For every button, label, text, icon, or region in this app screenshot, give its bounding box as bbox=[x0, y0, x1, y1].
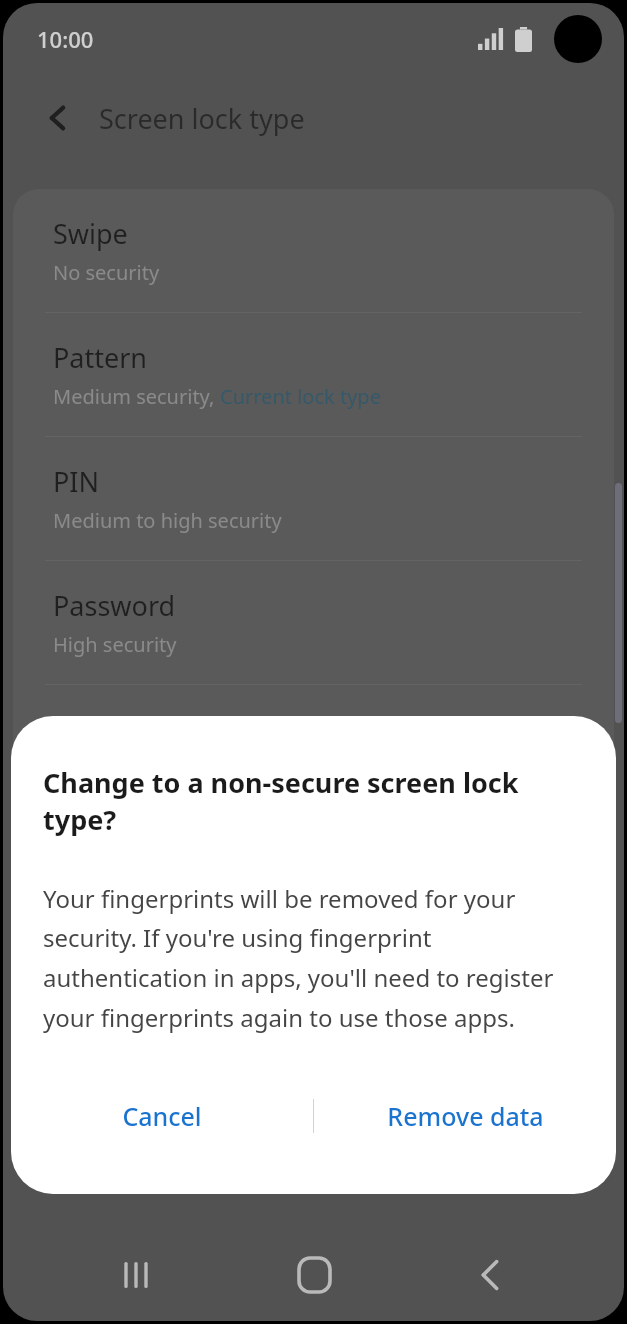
button[interactable]: PIN bbox=[13, 437, 614, 560]
staticText: PIN bbox=[53, 463, 100, 500]
button[interactable]: Pattern bbox=[13, 313, 614, 436]
staticText: Medium security, bbox=[53, 383, 220, 410]
button[interactable]: Cancel bbox=[11, 1080, 313, 1152]
staticText: Medium to high security bbox=[53, 507, 282, 534]
staticText: Pattern bbox=[53, 339, 148, 376]
button[interactable]: Home bbox=[283, 1244, 345, 1306]
staticText: Screen lock type bbox=[99, 100, 305, 137]
button[interactable]: Back bbox=[31, 91, 85, 145]
staticText: Remove data bbox=[387, 1099, 544, 1133]
staticText: Change to a non-secure screen lock type? bbox=[43, 764, 584, 838]
staticText: Swipe bbox=[53, 215, 128, 252]
button[interactable]: Remove data bbox=[314, 1080, 616, 1152]
button[interactable]: Recent apps bbox=[107, 1245, 167, 1305]
button[interactable]: Password bbox=[13, 561, 614, 684]
staticText: Cancel bbox=[122, 1099, 202, 1133]
staticText: Current lock type bbox=[220, 383, 381, 410]
staticText: Password bbox=[53, 587, 176, 624]
staticText: No security bbox=[53, 259, 160, 286]
staticText: Your fingerprints will be removed for yo… bbox=[43, 882, 584, 1034]
button[interactable]: Swipe bbox=[13, 189, 614, 312]
button[interactable]: Back bbox=[460, 1245, 520, 1305]
staticText: 10:00 bbox=[37, 24, 94, 54]
staticText: High security bbox=[53, 631, 177, 658]
